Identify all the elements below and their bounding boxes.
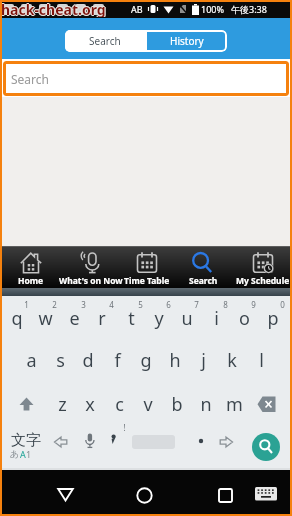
button[interactable]: Search (3, 61, 289, 96)
staticText: l (259, 348, 264, 373)
staticText: w (38, 306, 53, 331)
staticText: z (58, 392, 67, 417)
staticText: hack-cheat.org (1, 0, 106, 17)
staticText: 1 (26, 448, 32, 460)
staticText: c (115, 392, 124, 417)
staticText: 8 (223, 299, 228, 310)
staticText: 0 (280, 299, 285, 310)
button[interactable] (255, 487, 278, 501)
staticText: History (170, 34, 204, 48)
button[interactable]: Time Table (120, 247, 173, 288)
staticText: s (56, 348, 65, 373)
staticText: hack-cheat.org (1, 1, 106, 17)
button[interactable]: What's on Now (62, 247, 120, 288)
staticText: b (171, 392, 183, 417)
staticText: Search (11, 71, 49, 87)
staticText: i (214, 306, 219, 331)
staticText: 文字 (11, 431, 41, 450)
button[interactable] (252, 433, 280, 461)
staticText: f (114, 348, 121, 373)
button[interactable] (219, 435, 234, 450)
button[interactable]: Search (65, 30, 145, 52)
staticText: a (26, 348, 37, 373)
staticText: hack-cheat.org (2, 0, 107, 17)
staticText: 4 (109, 299, 114, 310)
staticText: u (181, 306, 193, 331)
staticText: Time Table (124, 275, 170, 287)
staticText: What's on Now (59, 275, 123, 287)
staticText: j (201, 348, 206, 373)
staticText: Search (189, 275, 218, 287)
staticText: A (20, 448, 26, 460)
staticText: ! (123, 422, 126, 433)
button[interactable]: History (147, 30, 227, 52)
staticText: 9 (251, 299, 256, 310)
staticText: Home (18, 275, 44, 287)
button[interactable] (218, 488, 233, 503)
staticText: v (143, 392, 153, 417)
staticText: g (140, 348, 152, 373)
button[interactable]: My Schedule (233, 247, 292, 288)
staticText: My Schedule (236, 275, 290, 287)
staticText: Search (89, 34, 121, 48)
staticText: n (200, 392, 212, 417)
staticText: 2 (52, 299, 57, 310)
button[interactable] (53, 435, 68, 450)
staticText: k (227, 348, 237, 373)
button[interactable]: Search (173, 247, 233, 288)
staticText: x (85, 392, 95, 417)
staticText: p (267, 306, 279, 331)
staticText: y (154, 306, 164, 331)
staticText: AB (131, 3, 143, 15)
staticText: hack-cheat.org (1, 0, 106, 17)
staticText: r (98, 306, 106, 331)
staticText: 6 (166, 299, 171, 310)
staticText: m (226, 392, 243, 417)
staticText: 午後3:38 (231, 3, 267, 15)
staticText: 1 (24, 299, 29, 310)
staticText: e (69, 306, 80, 331)
button[interactable] (57, 488, 74, 502)
staticText: 7 (194, 299, 199, 310)
button[interactable] (136, 487, 153, 504)
staticText: q (11, 306, 23, 331)
staticText: d (82, 348, 94, 373)
staticText: t (128, 306, 135, 331)
button[interactable]: Home (0, 247, 62, 288)
staticText: 5 (138, 299, 143, 310)
staticText: h (169, 348, 181, 373)
staticText: 100% (201, 3, 224, 15)
staticText: hack-cheat.org (0, 0, 105, 17)
staticText: 3 (81, 299, 86, 310)
button[interactable] (83, 433, 97, 450)
staticText: o (239, 306, 250, 331)
staticText: あ (10, 448, 20, 459)
